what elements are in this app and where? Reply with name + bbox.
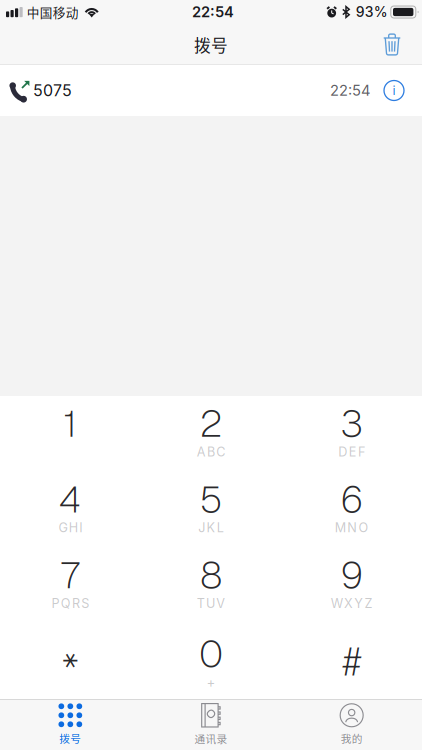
button[interactable]: 4 [0, 472, 141, 548]
staticText: PQRS [51, 596, 89, 611]
staticText: ABC [197, 444, 225, 460]
staticText: WXYZ [331, 596, 373, 611]
staticText: 22:54 [192, 3, 234, 21]
staticText: 中国移动 [27, 3, 79, 21]
staticText: MNO [335, 520, 368, 535]
button[interactable]: 6 [281, 472, 422, 548]
button[interactable]: Clear call log [372, 24, 412, 65]
staticText: 我的 [341, 730, 363, 746]
staticText: + [206, 674, 215, 690]
staticText: 5 [199, 475, 222, 523]
staticText: 93% [356, 3, 388, 20]
button[interactable]: 9 [281, 547, 422, 623]
staticText: 6 [340, 475, 363, 523]
staticText: 拨号 [59, 730, 81, 746]
button[interactable]: 2 [141, 396, 281, 472]
staticText: 1 [63, 399, 77, 448]
button[interactable]: 5075 [0, 65, 422, 116]
staticText: * [61, 643, 79, 697]
button[interactable]: # [281, 623, 422, 699]
staticText: 2 [199, 399, 222, 448]
button[interactable]: 我的 [281, 699, 422, 750]
button[interactable]: 7 [0, 547, 141, 623]
staticText: 3 [340, 399, 363, 448]
staticText: TUV [197, 596, 225, 611]
staticText: 8 [200, 551, 222, 599]
staticText: 拨号 [194, 32, 228, 56]
staticText: 5075 [33, 81, 72, 100]
staticText [68, 691, 72, 706]
staticText: JKL [198, 520, 224, 535]
staticText: DEF [338, 444, 365, 460]
staticText: 4 [59, 475, 82, 523]
staticText: 9 [340, 551, 363, 599]
button[interactable]: 8 [141, 547, 281, 623]
staticText: 通讯录 [194, 731, 227, 746]
staticText: i [392, 83, 395, 98]
staticText: GHI [58, 520, 82, 535]
staticText: 22:54 [330, 82, 370, 99]
button[interactable]: 通讯录 [141, 699, 281, 750]
button[interactable]: 1 [0, 396, 141, 472]
button[interactable]: 5 [141, 472, 281, 548]
staticText: 7 [61, 551, 80, 599]
staticText: 0 [199, 629, 223, 678]
button[interactable]: * [0, 623, 141, 699]
button[interactable]: 3 [281, 396, 422, 472]
button[interactable]: 拨号 [0, 699, 141, 750]
button[interactable]: 0 [141, 623, 281, 699]
staticText: # [343, 637, 361, 687]
